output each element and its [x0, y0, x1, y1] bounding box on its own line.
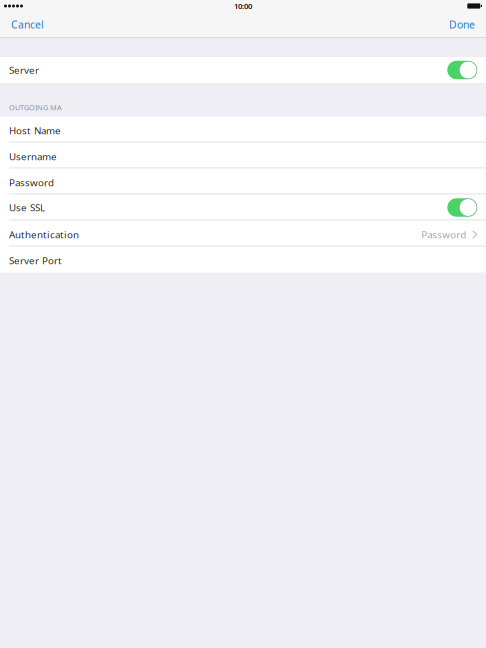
staticText: Host Name	[9, 124, 61, 137]
staticText: Server	[9, 63, 39, 77]
button[interactable]: Cancel	[0, 12, 58, 37]
staticText: OUTGOING MA	[9, 102, 62, 112]
button[interactable]: Username	[0, 142, 486, 168]
staticText: Use SSL	[9, 201, 45, 214]
button[interactable]: Done	[435, 12, 486, 37]
staticText: Done	[449, 17, 475, 32]
staticText: Password	[9, 176, 54, 189]
staticText: Cancel	[11, 17, 44, 32]
button[interactable]: Authentication	[0, 220, 486, 246]
staticText: Password	[421, 228, 466, 241]
button[interactable]: Server	[447, 61, 477, 79]
staticText: Authentication	[9, 228, 79, 241]
staticText: Server Port	[9, 254, 62, 267]
button[interactable]: Host Name	[0, 116, 486, 142]
button[interactable]: Use SSL	[447, 198, 477, 217]
staticText: Username	[9, 150, 57, 163]
button[interactable]: Server Port	[0, 246, 486, 272]
staticText: 10:00	[234, 1, 252, 11]
button[interactable]: Password	[0, 168, 486, 194]
